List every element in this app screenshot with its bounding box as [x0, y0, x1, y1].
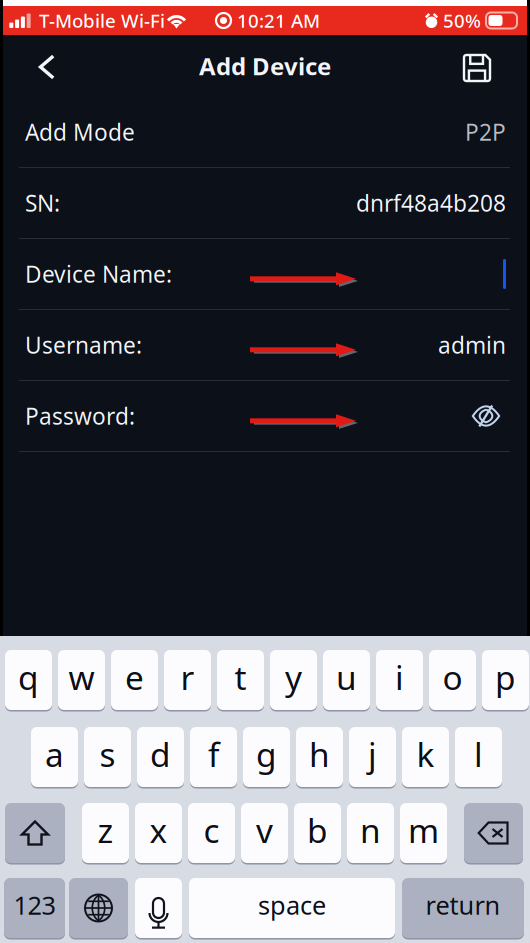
button[interactable]: y [270, 649, 317, 711]
staticText: q [18, 655, 39, 699]
staticText: Password: [25, 401, 135, 431]
staticText: y [285, 655, 302, 699]
button[interactable]: h [296, 726, 343, 788]
staticText: s [99, 732, 115, 776]
staticText: k [416, 732, 434, 776]
button[interactable]: u [323, 649, 370, 711]
staticText: c [203, 808, 219, 852]
staticText: t [234, 655, 246, 699]
staticText: T-Mobile Wi-Fi [39, 8, 165, 33]
staticText: a [45, 732, 64, 776]
staticText: Device Name: [25, 259, 172, 289]
button[interactable]: Dictate [135, 877, 182, 939]
button[interactable]: Next keyboard [69, 877, 128, 939]
button[interactable]: v [241, 802, 288, 864]
button[interactable]: r [164, 649, 211, 711]
button[interactable]: Save [448, 36, 506, 96]
button[interactable]: q [5, 649, 52, 711]
button[interactable]: 123 [4, 877, 65, 939]
staticText: l [474, 732, 483, 776]
button[interactable]: m [400, 802, 447, 864]
staticText: SN: [25, 188, 60, 218]
button[interactable]: f [190, 726, 237, 788]
staticText: w [68, 655, 94, 699]
staticText: g [256, 732, 277, 776]
button[interactable]: d [137, 726, 184, 788]
staticText: Username: [25, 330, 142, 360]
button[interactable]: k [402, 726, 449, 788]
staticText: 50% [443, 8, 481, 33]
button[interactable]: Shift [5, 802, 65, 864]
staticText: x [149, 808, 167, 852]
staticText: b [307, 808, 328, 852]
button[interactable]: s [84, 726, 131, 788]
button[interactable]: Show password [472, 401, 506, 431]
button[interactable]: t [217, 649, 264, 711]
staticText: Add Mode [25, 117, 135, 147]
staticText: p [495, 655, 516, 699]
staticText: 10:21 AM [237, 8, 320, 33]
staticText: return [425, 888, 500, 922]
button[interactable]: e [111, 649, 158, 711]
button[interactable]: a [31, 726, 78, 788]
button[interactable]: o [429, 649, 476, 711]
staticText: space [258, 888, 326, 922]
staticText: 123 [13, 888, 55, 922]
button[interactable]: return [402, 877, 524, 939]
staticText: i [395, 655, 404, 699]
button[interactable]: p [482, 649, 529, 711]
staticText: m [408, 808, 439, 852]
staticText: Add Device [199, 50, 331, 82]
button[interactable]: j [349, 726, 396, 788]
staticText: u [336, 655, 357, 699]
staticText: d [150, 732, 171, 776]
staticText: admin [438, 330, 506, 360]
button[interactable]: space [189, 877, 395, 939]
staticText: e [125, 655, 144, 699]
staticText: P2P [465, 117, 506, 147]
button[interactable]: c [188, 802, 235, 864]
button[interactable]: Back [17, 36, 75, 96]
button[interactable]: n [347, 802, 394, 864]
button[interactable]: Delete [464, 802, 523, 864]
button[interactable]: w [58, 649, 105, 711]
button[interactable]: x [135, 802, 182, 864]
staticText: h [309, 732, 330, 776]
staticText: n [360, 808, 381, 852]
staticText: r [180, 655, 194, 699]
button[interactable]: z [82, 802, 129, 864]
staticText: j [368, 732, 377, 776]
staticText: o [442, 655, 462, 699]
staticText: v [256, 808, 273, 852]
button[interactable]: i [376, 649, 423, 711]
button[interactable]: l [455, 726, 502, 788]
button[interactable]: g [243, 726, 290, 788]
staticText: f [208, 732, 219, 776]
button[interactable]: b [294, 802, 341, 864]
staticText: dnrf48a4b208 [356, 188, 506, 218]
staticText: z [97, 808, 113, 852]
